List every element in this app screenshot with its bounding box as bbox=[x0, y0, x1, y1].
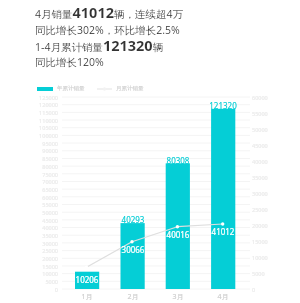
staticText: 15000 bbox=[252, 238, 292, 303]
staticText: 10000 bbox=[18, 270, 58, 303]
staticText: 80308 bbox=[148, 155, 208, 303]
staticText: 1月 bbox=[57, 292, 117, 303]
staticText: 55000 bbox=[18, 201, 58, 303]
staticText: 4月 bbox=[193, 292, 253, 303]
staticText: 25000 bbox=[18, 247, 58, 303]
staticText: 45000 bbox=[18, 217, 58, 303]
staticText: 40000 bbox=[252, 158, 292, 303]
staticText: 50000 bbox=[18, 209, 58, 303]
staticText: 80000 bbox=[18, 163, 58, 303]
staticText: 125000 bbox=[18, 94, 58, 303]
staticText: 110000 bbox=[18, 117, 58, 303]
staticText: 10206 bbox=[57, 274, 117, 303]
staticText: 121320 bbox=[193, 100, 253, 303]
staticText: 55000 bbox=[252, 110, 292, 303]
staticText: 30066 bbox=[103, 244, 163, 303]
staticText: 30000 bbox=[252, 190, 292, 303]
staticText: 2月 bbox=[103, 292, 163, 303]
staticText: 1-4月累计销量121320辆 bbox=[35, 35, 164, 55]
staticText: 65000 bbox=[18, 186, 58, 303]
staticText: 15000 bbox=[18, 263, 58, 303]
staticText: 60000 bbox=[252, 94, 292, 303]
staticText: 4月销量41012辆，连续超4万 bbox=[35, 2, 183, 22]
staticText: 85000 bbox=[18, 155, 58, 303]
staticText: 20000 bbox=[252, 222, 292, 303]
staticText: 35000 bbox=[18, 232, 58, 303]
staticText: 20000 bbox=[18, 255, 58, 303]
staticText: 25000 bbox=[252, 206, 292, 303]
staticText: 同比增长302%，环比增长2.5% bbox=[35, 23, 180, 37]
button[interactable]: 年累计销量 bbox=[37, 84, 85, 93]
staticText: 100000 bbox=[18, 132, 58, 303]
staticText: 30000 bbox=[18, 240, 58, 303]
staticText: 115000 bbox=[18, 109, 58, 303]
staticText: 45000 bbox=[252, 142, 292, 303]
staticText: 40016 bbox=[148, 229, 208, 303]
staticText: 50000 bbox=[252, 126, 292, 303]
staticText: 105000 bbox=[18, 124, 58, 303]
staticText: 75000 bbox=[18, 171, 58, 303]
staticText: 40293 bbox=[103, 214, 163, 303]
staticText: 月累计销量 bbox=[116, 85, 144, 92]
staticText: 60000 bbox=[18, 194, 58, 303]
staticText: 90000 bbox=[18, 147, 58, 303]
staticText: 同比增长120% bbox=[35, 55, 104, 69]
staticText: 35000 bbox=[252, 174, 292, 303]
staticText: 41012 bbox=[193, 226, 253, 303]
staticText: 年累计销量 bbox=[57, 85, 85, 92]
button[interactable]: 月累计销量 bbox=[97, 84, 300, 93]
staticText: 95000 bbox=[18, 140, 58, 303]
staticText: 40000 bbox=[18, 224, 58, 303]
staticText: 3月 bbox=[148, 292, 208, 303]
staticText: 70000 bbox=[18, 178, 58, 303]
staticText: 120000 bbox=[18, 101, 58, 303]
